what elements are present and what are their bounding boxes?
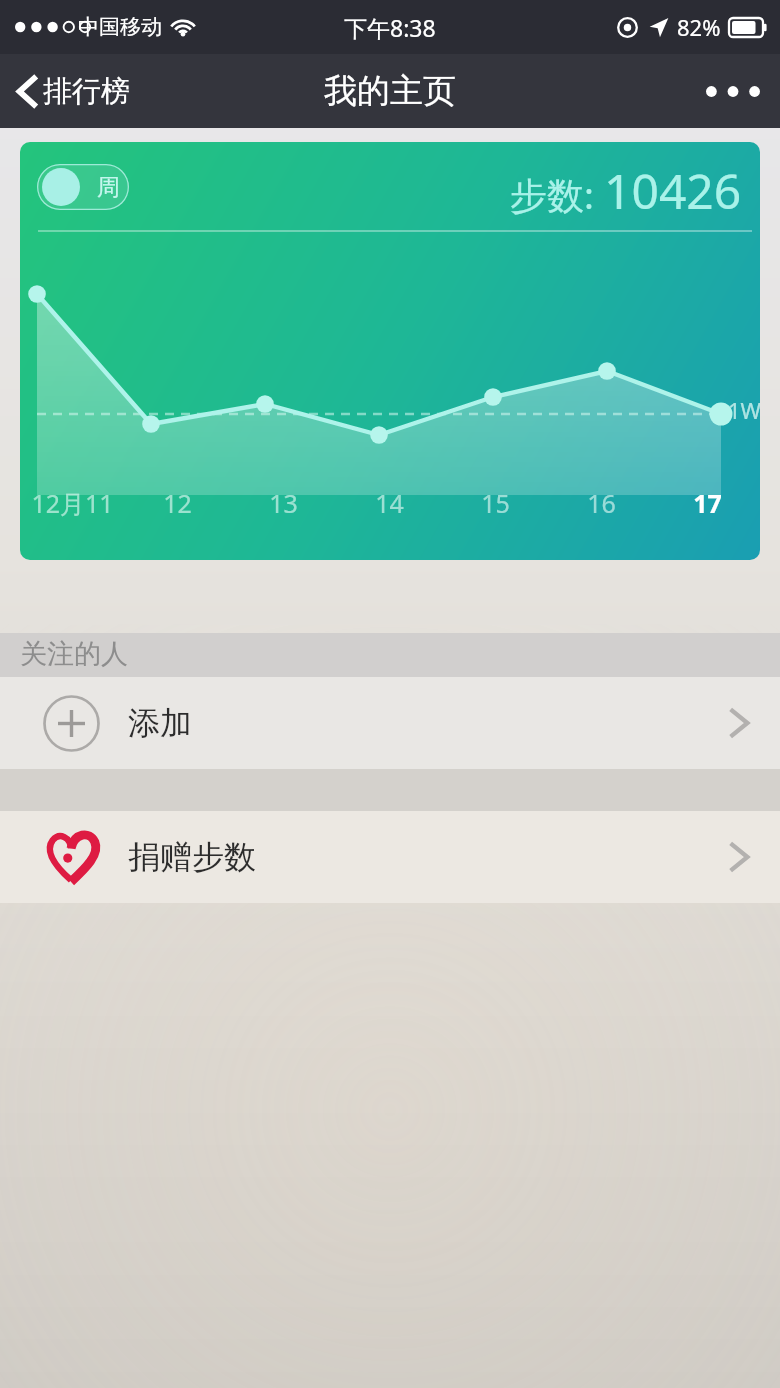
staticText: 16 [587,486,616,520]
staticText: 中国移动 [78,14,162,40]
staticText: 我的主页 [324,70,456,112]
staticText: 15 [481,486,510,520]
staticText: 1W [728,395,760,425]
button[interactable]: More options [686,64,780,119]
staticText: 排行榜 [43,73,130,110]
staticText: 下午8:38 [344,12,436,43]
staticText: 82% [677,12,721,42]
staticText: 周 [97,173,120,202]
staticText: 添加 [128,703,192,743]
staticText: 13 [269,486,298,520]
staticText: 步数: [510,169,594,220]
button[interactable]: 排行榜 [0,63,144,120]
staticText: 14 [375,486,404,520]
button[interactable]: 周 [37,164,129,210]
staticText: 12月11 [31,486,114,520]
staticText: 10426 [604,158,742,223]
staticText: 关注的人 [20,637,128,671]
staticText: 捐赠步数 [128,837,256,877]
button[interactable]: Donate steps [0,811,780,903]
staticText: 17 [693,486,722,520]
button[interactable]: 周 [20,142,760,560]
staticText: 12 [163,486,192,520]
button[interactable]: Add person [0,677,780,769]
